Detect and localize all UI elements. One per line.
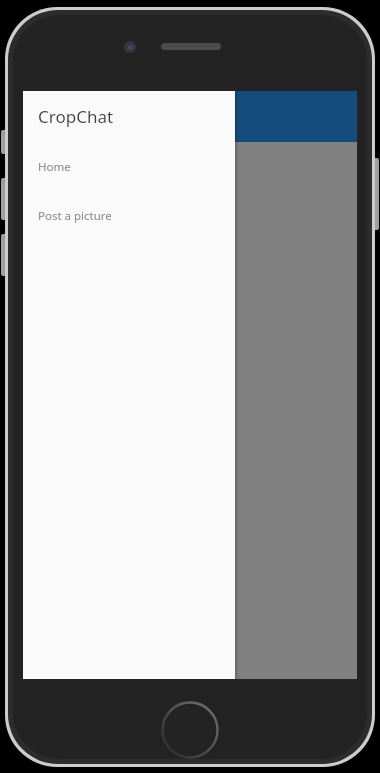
button[interactable]: Home	[23, 142, 235, 191]
button[interactable]: Close navigation drawer	[23, 91, 357, 679]
staticText: CropChat	[38, 105, 114, 128]
staticText: Post a picture	[38, 208, 112, 224]
staticText: Home	[38, 159, 71, 175]
button[interactable]: Post a picture	[23, 191, 235, 240]
